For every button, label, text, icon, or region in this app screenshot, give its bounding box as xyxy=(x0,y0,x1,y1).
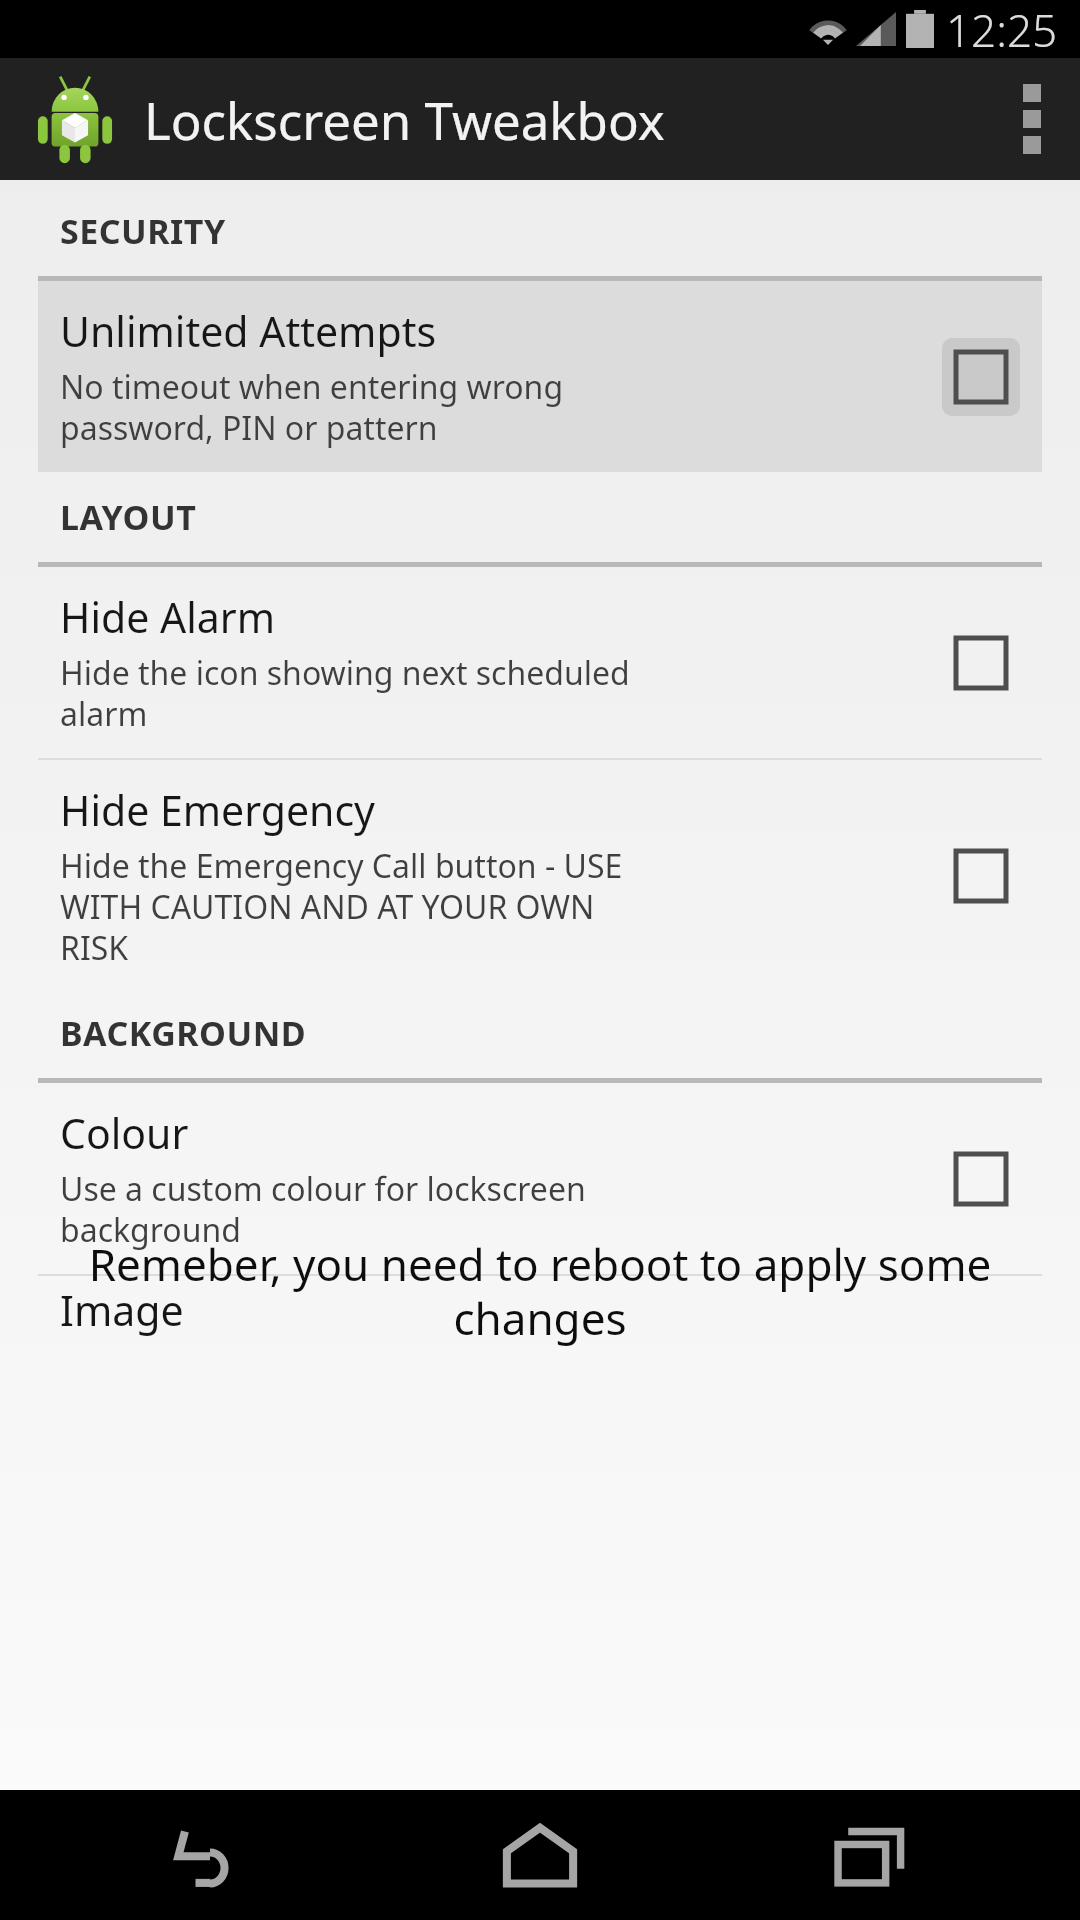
button[interactable]: Recent apps xyxy=(750,1790,990,1920)
button[interactable]: Image xyxy=(0,1276,1080,1346)
staticText: SECURITY xyxy=(60,208,226,254)
staticText: Hide the icon showing next scheduled ala… xyxy=(60,651,630,736)
staticText: Image xyxy=(60,1282,184,1338)
button[interactable]: Home xyxy=(420,1790,660,1920)
staticText: LAYOUT xyxy=(60,494,197,540)
staticText: Lockscreen Tweakbox xyxy=(144,85,665,154)
button[interactable]: Toggle setting xyxy=(942,1140,1020,1218)
button[interactable]: Colour xyxy=(0,1083,1080,1274)
staticText: Hide Alarm xyxy=(60,589,276,645)
staticText: Hide the Emergency Call button - USE WIT… xyxy=(60,844,623,970)
staticText: 12:25 xyxy=(946,0,1058,58)
staticText: Colour xyxy=(60,1105,189,1161)
button[interactable]: Toggle setting xyxy=(942,624,1020,702)
staticText: BACKGROUND xyxy=(60,1010,307,1056)
button[interactable]: Toggle setting xyxy=(942,837,1020,915)
staticText: Unlimited Attempts xyxy=(60,303,437,359)
staticText: Use a custom colour for lockscreen backg… xyxy=(60,1167,586,1252)
staticText: Hide Emergency xyxy=(60,782,376,838)
button[interactable]: Hide Emergency xyxy=(0,760,1080,992)
staticText: Remeber, you need to reboot to apply som… xyxy=(18,1234,1062,1348)
button[interactable]: Hide Alarm xyxy=(0,567,1080,758)
button[interactable]: Back xyxy=(90,1790,330,1920)
button[interactable]: Toggle setting xyxy=(942,338,1020,416)
staticText: No timeout when entering wrong password,… xyxy=(60,365,564,450)
button[interactable]: Unlimited Attempts xyxy=(38,281,1042,472)
button[interactable]: More options xyxy=(984,58,1080,180)
